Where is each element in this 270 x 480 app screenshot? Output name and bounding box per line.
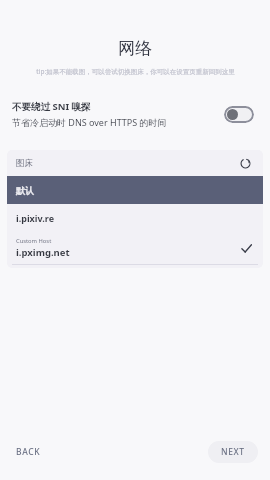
staticText: NEXT <box>221 446 245 458</box>
button[interactable]: Custom Host <box>7 232 263 264</box>
staticText: 图床 <box>16 158 33 169</box>
button[interactable]: Refresh <box>236 154 254 172</box>
staticText: 不要绕过 SNI 嗅探 <box>12 100 91 113</box>
button[interactable]: 默认 <box>7 176 263 204</box>
staticText: 默认 <box>16 185 34 196</box>
staticText: tip:如果不能载图，可以尝试切换图床，你可以在设置页重新回到这里 <box>36 67 235 76</box>
button[interactable]: BACK <box>12 441 45 463</box>
button[interactable]: Toggle SNI sniffing <box>220 102 258 127</box>
staticText: i.pximg.net <box>16 246 70 259</box>
button[interactable]: i.pixiv.re <box>7 204 263 232</box>
button[interactable]: 图床 <box>7 150 263 176</box>
staticText: 节省冷启动时 DNS over HTTPS 的时间 <box>12 116 167 128</box>
staticText: 网络 <box>118 38 152 59</box>
button[interactable]: 不要绕过 SNI 嗅探 <box>0 96 270 132</box>
staticText: i.pixiv.re <box>16 212 55 224</box>
staticText: BACK <box>16 446 41 458</box>
button[interactable]: NEXT <box>208 441 258 463</box>
staticText: Custom Host <box>16 237 52 245</box>
